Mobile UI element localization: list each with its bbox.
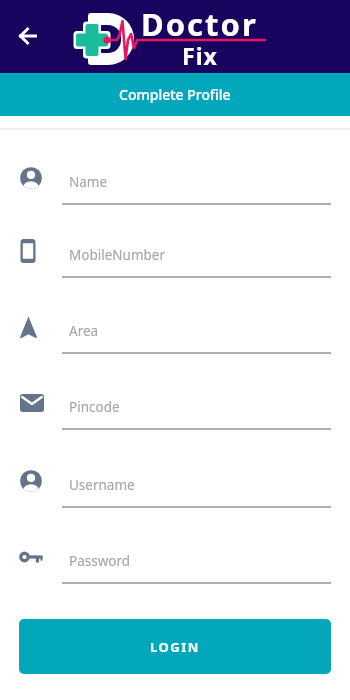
button[interactable]: Name <box>0 152 350 206</box>
staticText: Area <box>69 322 99 340</box>
staticText: Pincode <box>69 398 120 416</box>
staticText: Name <box>69 173 108 191</box>
button[interactable]: Password <box>0 531 350 585</box>
button[interactable]: Area <box>0 301 350 355</box>
staticText: LOGIN <box>150 638 200 656</box>
button[interactable]: MobileNumber <box>0 225 350 279</box>
staticText: Username <box>69 476 135 494</box>
staticText: Doctor <box>141 3 258 45</box>
staticText: Fix <box>182 40 218 71</box>
staticText: Complete Profile <box>119 85 231 104</box>
button[interactable] <box>12 20 44 52</box>
button[interactable]: LOGIN <box>19 619 331 674</box>
staticText: Password <box>69 552 131 570</box>
button[interactable]: Pincode <box>0 377 350 431</box>
button[interactable]: Username <box>0 455 350 509</box>
staticText: MobileNumber <box>69 246 166 264</box>
